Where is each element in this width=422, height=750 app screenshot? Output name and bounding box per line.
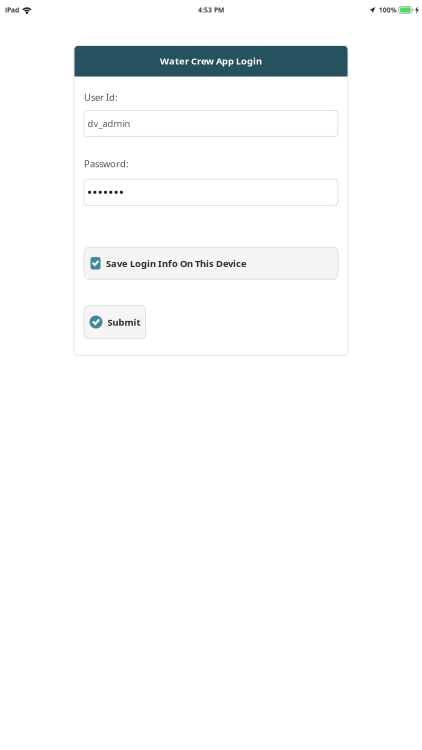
staticText: 4:53 PM xyxy=(198,6,224,14)
staticText: Save Login Info On This Device xyxy=(106,257,247,269)
staticText: Password: xyxy=(84,157,129,170)
staticText: 100% xyxy=(379,6,397,14)
staticText: Water Crew App Login xyxy=(160,55,262,67)
staticText: Submit xyxy=(107,316,140,328)
button[interactable]: Submit xyxy=(84,305,145,339)
staticText: User Id: xyxy=(84,91,118,103)
button[interactable]: Save Login Info On This Device xyxy=(84,247,338,279)
staticText: dv_admin xyxy=(87,117,130,130)
staticText: iPad xyxy=(5,6,19,14)
